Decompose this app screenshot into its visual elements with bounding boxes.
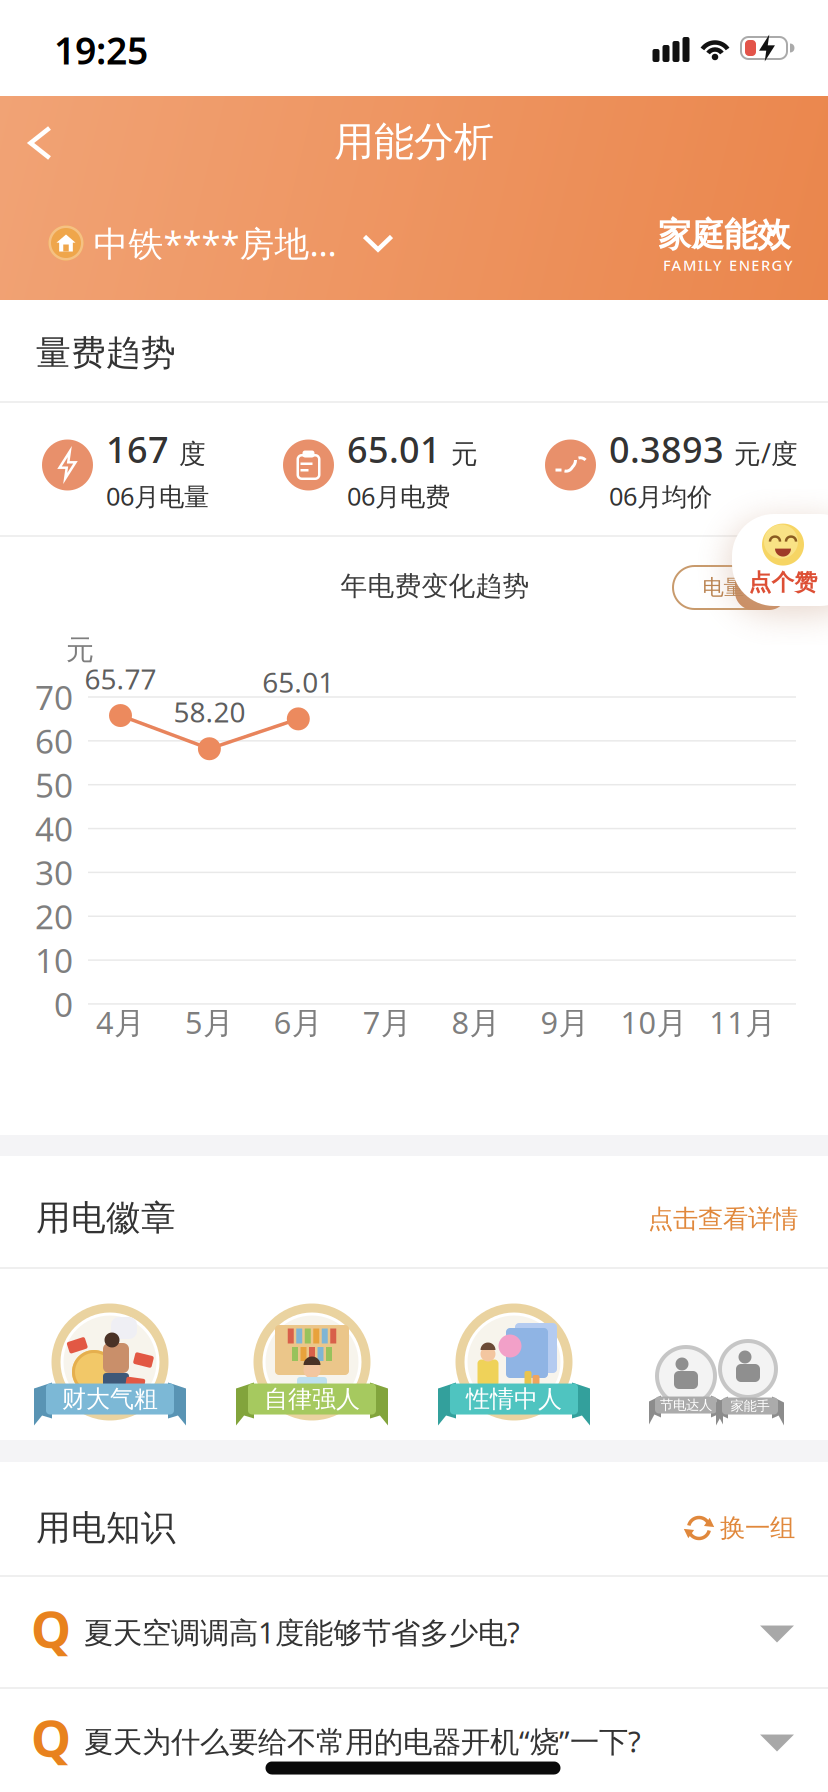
staticText: 用能分析 [334, 117, 494, 166]
staticText: 11月 [709, 1002, 776, 1042]
button[interactable]: 财大气粗 [10, 1272, 210, 1452]
staticText: 性情中人 [466, 1384, 562, 1414]
button[interactable]: 性情中人 [414, 1272, 614, 1452]
staticText: 节电达人 [660, 1397, 712, 1413]
staticText: 家能手 [730, 1398, 769, 1414]
staticText: 4月 [96, 1002, 145, 1042]
staticText: 电量 [702, 574, 744, 601]
staticText: 8月 [452, 1002, 501, 1042]
staticText: 65.01 [347, 425, 441, 473]
staticText: 财大气粗 [62, 1384, 158, 1414]
button[interactable]: Q [0, 1689, 828, 1792]
staticText: 6月 [274, 1002, 323, 1042]
staticText: Q [31, 1703, 71, 1771]
staticText: 06月均价 [609, 479, 712, 513]
staticText: 65.77 [84, 660, 156, 697]
staticText: 中铁****房地... [93, 220, 336, 266]
button[interactable]: 点个赞 [732, 514, 828, 606]
staticText: Q [31, 1594, 71, 1662]
staticText: 70 [35, 675, 73, 719]
staticText: 换一组 [720, 1512, 795, 1543]
staticText: 30 [35, 850, 73, 895]
staticText: 50 [35, 763, 73, 807]
staticText: 06月电量 [106, 479, 209, 513]
staticText: 夏天为什么要给不常用的电器开机“烧”一下? [84, 1721, 641, 1760]
staticText: 用电知识 [36, 1507, 176, 1549]
button[interactable]: 中铁****房地... [48, 220, 391, 266]
button[interactable]: 电量 [672, 565, 787, 610]
staticText: 5月 [185, 1002, 234, 1042]
staticText: 7月 [363, 1002, 412, 1042]
staticText: 65.01 [262, 663, 334, 700]
button[interactable]: 节电达人 [618, 1272, 818, 1452]
staticText: 家庭能效 [658, 214, 790, 255]
staticText: 夏天空调调高1度能够节省多少电? [84, 1612, 520, 1651]
staticText: 点个赞 [748, 569, 817, 596]
staticText: 10 [35, 938, 73, 982]
staticText: 度 [179, 438, 206, 470]
staticText: 自律强人 [264, 1384, 360, 1414]
staticText: 40 [35, 806, 73, 851]
button[interactable]: 换一组 [685, 1512, 795, 1543]
staticText: 9月 [540, 1002, 589, 1042]
staticText: 元/度 [734, 435, 798, 471]
button[interactable]: Back [18, 116, 61, 170]
staticText: 10月 [620, 1002, 687, 1042]
staticText: 60 [35, 719, 73, 763]
button[interactable]: 点击查看详情 [648, 1203, 798, 1234]
staticText: FAMILY ENERGY [663, 255, 793, 275]
staticText: 0 [54, 982, 73, 1026]
staticText: 58.20 [173, 693, 245, 730]
staticText: 167 [106, 425, 169, 473]
staticText: 20 [35, 894, 73, 938]
staticText: 点击查看详情 [648, 1203, 798, 1234]
staticText: 量费趋势 [36, 332, 176, 374]
staticText: 元 [66, 633, 94, 667]
staticText: 06月电费 [347, 479, 450, 513]
staticText: 19:25 [54, 25, 148, 75]
staticText: 0.3893 [609, 425, 724, 473]
staticText: 元 [451, 438, 478, 470]
button[interactable]: Q [0, 1577, 828, 1687]
staticText: 年电费变化趋势 [340, 570, 529, 602]
staticText: 用电徽章 [36, 1197, 176, 1239]
button[interactable]: 自律强人 [212, 1272, 412, 1452]
